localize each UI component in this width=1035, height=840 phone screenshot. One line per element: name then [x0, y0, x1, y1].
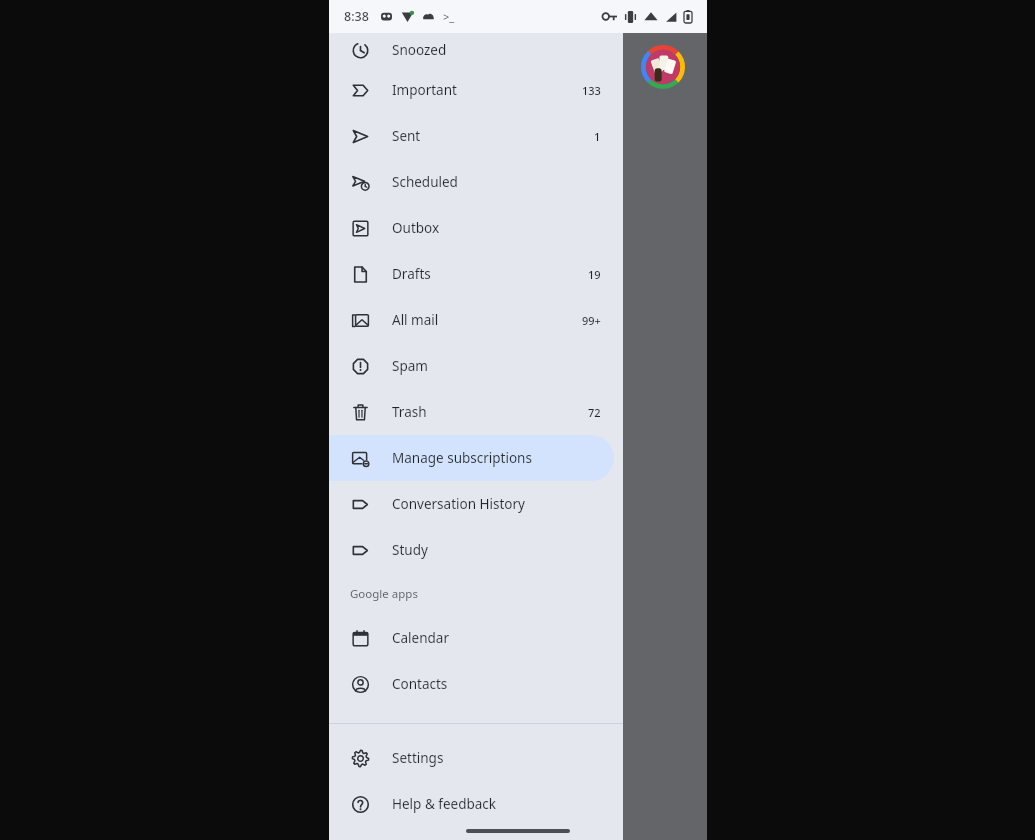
staticText: 19 [588, 267, 601, 282]
staticText: Study [392, 541, 428, 559]
button[interactable]: Sent [329, 113, 614, 159]
button[interactable]: Important [329, 67, 614, 113]
button[interactable]: Spam [329, 343, 614, 389]
staticText: Conversation History [392, 495, 525, 513]
staticText: Sent [392, 127, 421, 145]
button[interactable]: Close navigation drawer [329, 33, 707, 840]
staticText: Trash [392, 403, 427, 421]
button[interactable]: Trash [329, 389, 614, 435]
staticText: 1 [594, 129, 601, 144]
staticText: Help & feedback [392, 795, 497, 813]
staticText: Drafts [392, 265, 431, 283]
button[interactable]: Outbox [329, 205, 614, 251]
button[interactable]: Drafts [329, 251, 614, 297]
button[interactable]: Help & feedback [329, 781, 614, 827]
button[interactable]: Calendar [329, 615, 614, 661]
staticText: Spam [392, 357, 428, 375]
button[interactable]: Settings [329, 735, 614, 781]
button[interactable]: Snoozed [329, 33, 614, 67]
staticText: Outbox [392, 219, 440, 237]
staticText: Contacts [392, 675, 448, 693]
staticText: Snoozed [392, 41, 447, 59]
staticText: 8:38 [344, 8, 369, 25]
button[interactable]: Manage subscriptions [329, 435, 614, 481]
button[interactable]: Contacts [329, 661, 614, 707]
button[interactable]: Conversation History [329, 481, 614, 527]
staticText: Manage subscriptions [392, 449, 532, 467]
staticText: Important [392, 81, 457, 99]
button[interactable]: All mail [329, 297, 614, 343]
staticText: >_ [443, 9, 455, 24]
button[interactable]: Account [640, 44, 686, 90]
button[interactable]: Scheduled [329, 159, 614, 205]
staticText: Scheduled [392, 173, 458, 191]
staticText: Settings [392, 749, 444, 767]
staticText: Google apps [350, 586, 418, 602]
staticText: 99+ [582, 313, 601, 328]
staticText: 133 [582, 83, 601, 98]
staticText: Calendar [392, 629, 449, 647]
button[interactable]: Study [329, 527, 614, 573]
staticText: All mail [392, 311, 439, 329]
staticText: 72 [588, 405, 601, 420]
